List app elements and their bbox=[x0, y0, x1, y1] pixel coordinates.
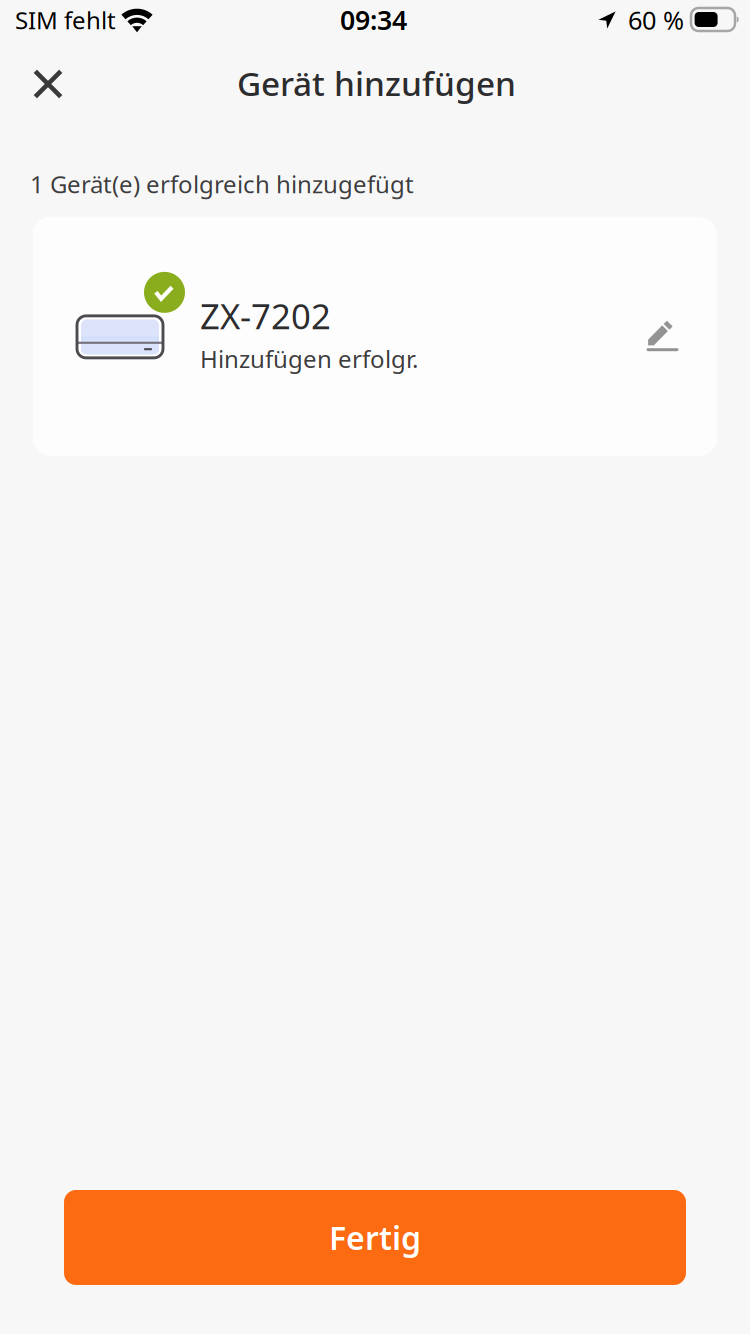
staticText: SIM fehlt bbox=[15, 4, 116, 36]
button[interactable]: Fertig bbox=[64, 1190, 686, 1285]
staticText: 1 Gerät(e) erfolgreich hinzugefügt bbox=[30, 168, 414, 200]
staticText: Gerät hinzufügen bbox=[237, 61, 516, 105]
button[interactable]: Gerät umbenennen bbox=[634, 306, 691, 363]
staticText: Fertig bbox=[329, 1216, 421, 1259]
staticText: ZX-7202 bbox=[200, 293, 331, 339]
button[interactable]: Schließen bbox=[18, 54, 78, 114]
staticText: Hinzufügen erfolgr. bbox=[200, 343, 418, 375]
staticText: 60 % bbox=[628, 3, 684, 37]
staticText: 09:34 bbox=[340, 2, 407, 37]
